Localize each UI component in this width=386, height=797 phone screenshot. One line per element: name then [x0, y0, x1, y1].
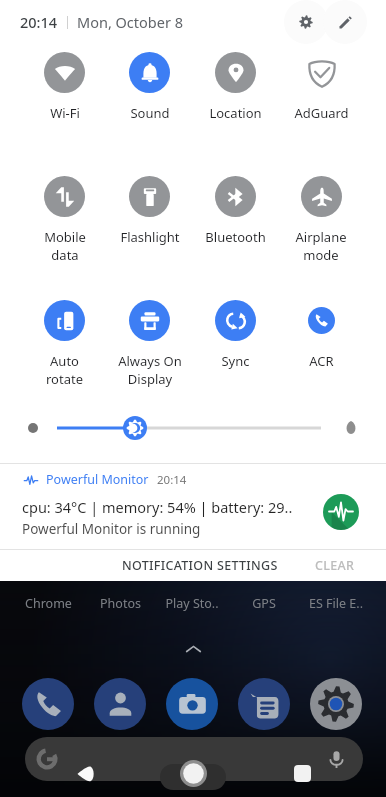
button[interactable]: Edit — [323, 0, 367, 44]
button[interactable]: Airplane mode — [278, 168, 364, 292]
button[interactable]: Chrome — [12, 595, 84, 612]
staticText: 20:14 — [157, 472, 187, 488]
button[interactable]: Play Sto.. — [156, 595, 228, 612]
button[interactable]: Search — [25, 737, 363, 781]
button[interactable]: Always On Display — [107, 292, 192, 406]
button[interactable]: Auto rotate — [22, 292, 107, 406]
staticText: Play Sto.. — [165, 595, 219, 612]
button[interactable]: GPS — [228, 595, 300, 612]
button[interactable]: Home — [177, 757, 209, 789]
staticText: Sound — [130, 104, 170, 122]
button[interactable]: Settings — [284, 0, 328, 44]
button[interactable]: Flashlight — [107, 168, 192, 292]
button[interactable]: Wi-Fi — [22, 44, 107, 168]
staticText: Powerful Monitor is running — [22, 520, 201, 538]
button[interactable]: Photos — [84, 595, 156, 612]
staticText: Airplane mode — [295, 228, 347, 264]
staticText: Sync — [221, 352, 250, 370]
staticText: Bluetooth — [205, 228, 266, 246]
staticText: GPS — [252, 595, 276, 612]
staticText: AdGuard — [294, 104, 349, 122]
staticText: Photos — [100, 595, 141, 612]
staticText: Powerful Monitor — [46, 471, 149, 488]
staticText: Mobile data — [44, 228, 86, 264]
button[interactable]: settings — [310, 678, 362, 730]
button[interactable]: Sound — [107, 44, 192, 168]
button[interactable]: Location — [192, 44, 278, 168]
button[interactable]: CLEAR — [303, 550, 367, 581]
button[interactable]: Recents — [286, 757, 318, 789]
staticText: Chrome — [25, 595, 72, 612]
button[interactable]: Mobile data — [22, 168, 107, 292]
button[interactable]: Bluetooth — [192, 168, 278, 292]
button[interactable]: Powerful Monitor — [0, 464, 386, 549]
staticText: NOTIFICATION SETTINGS — [122, 557, 278, 574]
button[interactable]: NOTIFICATION SETTINGS — [110, 550, 290, 581]
staticText: CLEAR — [315, 557, 355, 574]
button[interactable]: ACR — [278, 292, 364, 406]
button[interactable]: ES File E.. — [300, 595, 372, 612]
staticText: Flashlight — [120, 228, 180, 246]
button[interactable]: Back — [69, 757, 101, 789]
button[interactable]: messages — [238, 678, 290, 730]
staticText: Auto rotate — [46, 352, 83, 388]
button[interactable]: contacts — [94, 678, 146, 730]
staticText: Mon, October 8 — [77, 12, 183, 32]
staticText: Wi-Fi — [50, 104, 80, 122]
staticText: ES File E.. — [309, 595, 363, 612]
button[interactable]: camera — [166, 678, 218, 730]
button[interactable]: All apps — [185, 641, 202, 658]
button[interactable]: Brightness — [0, 406, 386, 450]
button[interactable]: Sync — [192, 292, 278, 406]
staticText: Location — [209, 104, 262, 122]
button[interactable]: phone — [22, 678, 74, 730]
staticText: Always On Display — [118, 352, 182, 388]
staticText: ACR — [309, 352, 334, 370]
button[interactable]: AdGuard — [278, 44, 364, 168]
staticText: cpu: 34°C | memory: 54% | battery: 29.. — [22, 497, 293, 517]
staticText: 20:14 — [20, 12, 58, 32]
